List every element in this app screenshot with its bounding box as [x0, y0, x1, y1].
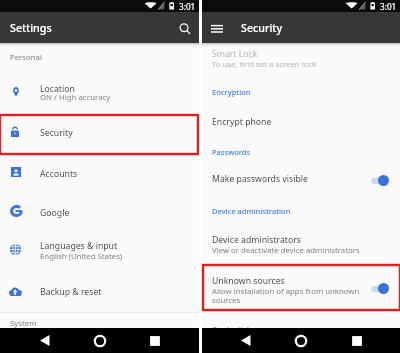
staticText: To use, first set a screen lock	[212, 59, 317, 70]
staticText: Credentials	[212, 324, 253, 334]
staticText: Languages & input	[40, 240, 118, 252]
button[interactable]: Recents	[350, 334, 364, 348]
staticText: Passwords	[212, 147, 251, 157]
button[interactable]: Toggle	[371, 283, 393, 294]
staticText: Unknown sources	[212, 275, 285, 287]
staticText: Personal	[10, 52, 42, 63]
staticText: 3:01	[380, 1, 397, 12]
staticText: Backup & reset	[40, 286, 102, 298]
staticText: Smart Lock	[212, 48, 258, 60]
staticText: Security	[241, 21, 283, 36]
button[interactable]: Menu	[211, 23, 223, 35]
button[interactable]: Home	[294, 334, 308, 348]
button[interactable]: Toggle	[371, 175, 393, 186]
staticText: Allow installation of apps from unknown …	[212, 286, 360, 305]
staticText: Encrypt phone	[212, 116, 272, 128]
button[interactable]: Back	[40, 335, 54, 346]
staticText: 3:01	[179, 1, 196, 12]
button[interactable]: Search	[177, 21, 193, 37]
button[interactable]: Home	[93, 334, 107, 348]
staticText: ON / High accuracy	[40, 92, 111, 103]
staticText: Google	[40, 207, 70, 219]
staticText: English (United States)	[40, 251, 123, 262]
staticText: Make passwords visible	[212, 173, 308, 185]
staticText: Location	[40, 83, 75, 95]
staticText: Encryption	[212, 87, 251, 97]
staticText: Device administration	[212, 206, 291, 216]
button[interactable]: Recents	[148, 334, 162, 348]
staticText: Settings	[10, 21, 52, 36]
staticText: View or deactivate device administrators	[212, 245, 360, 256]
staticText: Accounts	[40, 168, 78, 180]
button[interactable]: Back	[241, 335, 255, 346]
staticText: Device administrators	[212, 234, 301, 246]
staticText: Security	[40, 127, 73, 139]
staticText: System	[10, 318, 37, 329]
